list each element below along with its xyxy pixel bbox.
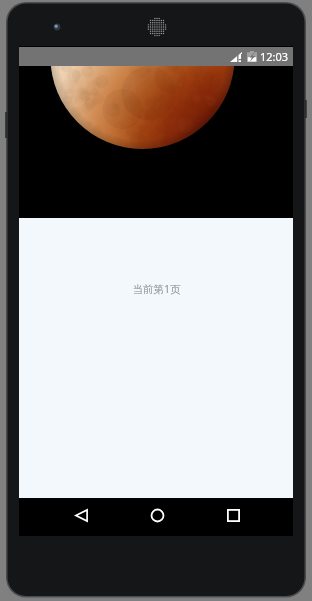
staticText: 12:03 xyxy=(260,49,289,64)
button[interactable]: Back xyxy=(43,498,119,533)
staticText: 当前第1页 xyxy=(132,282,181,296)
button[interactable]: Recents xyxy=(195,498,271,533)
button[interactable]: Home xyxy=(119,498,195,533)
